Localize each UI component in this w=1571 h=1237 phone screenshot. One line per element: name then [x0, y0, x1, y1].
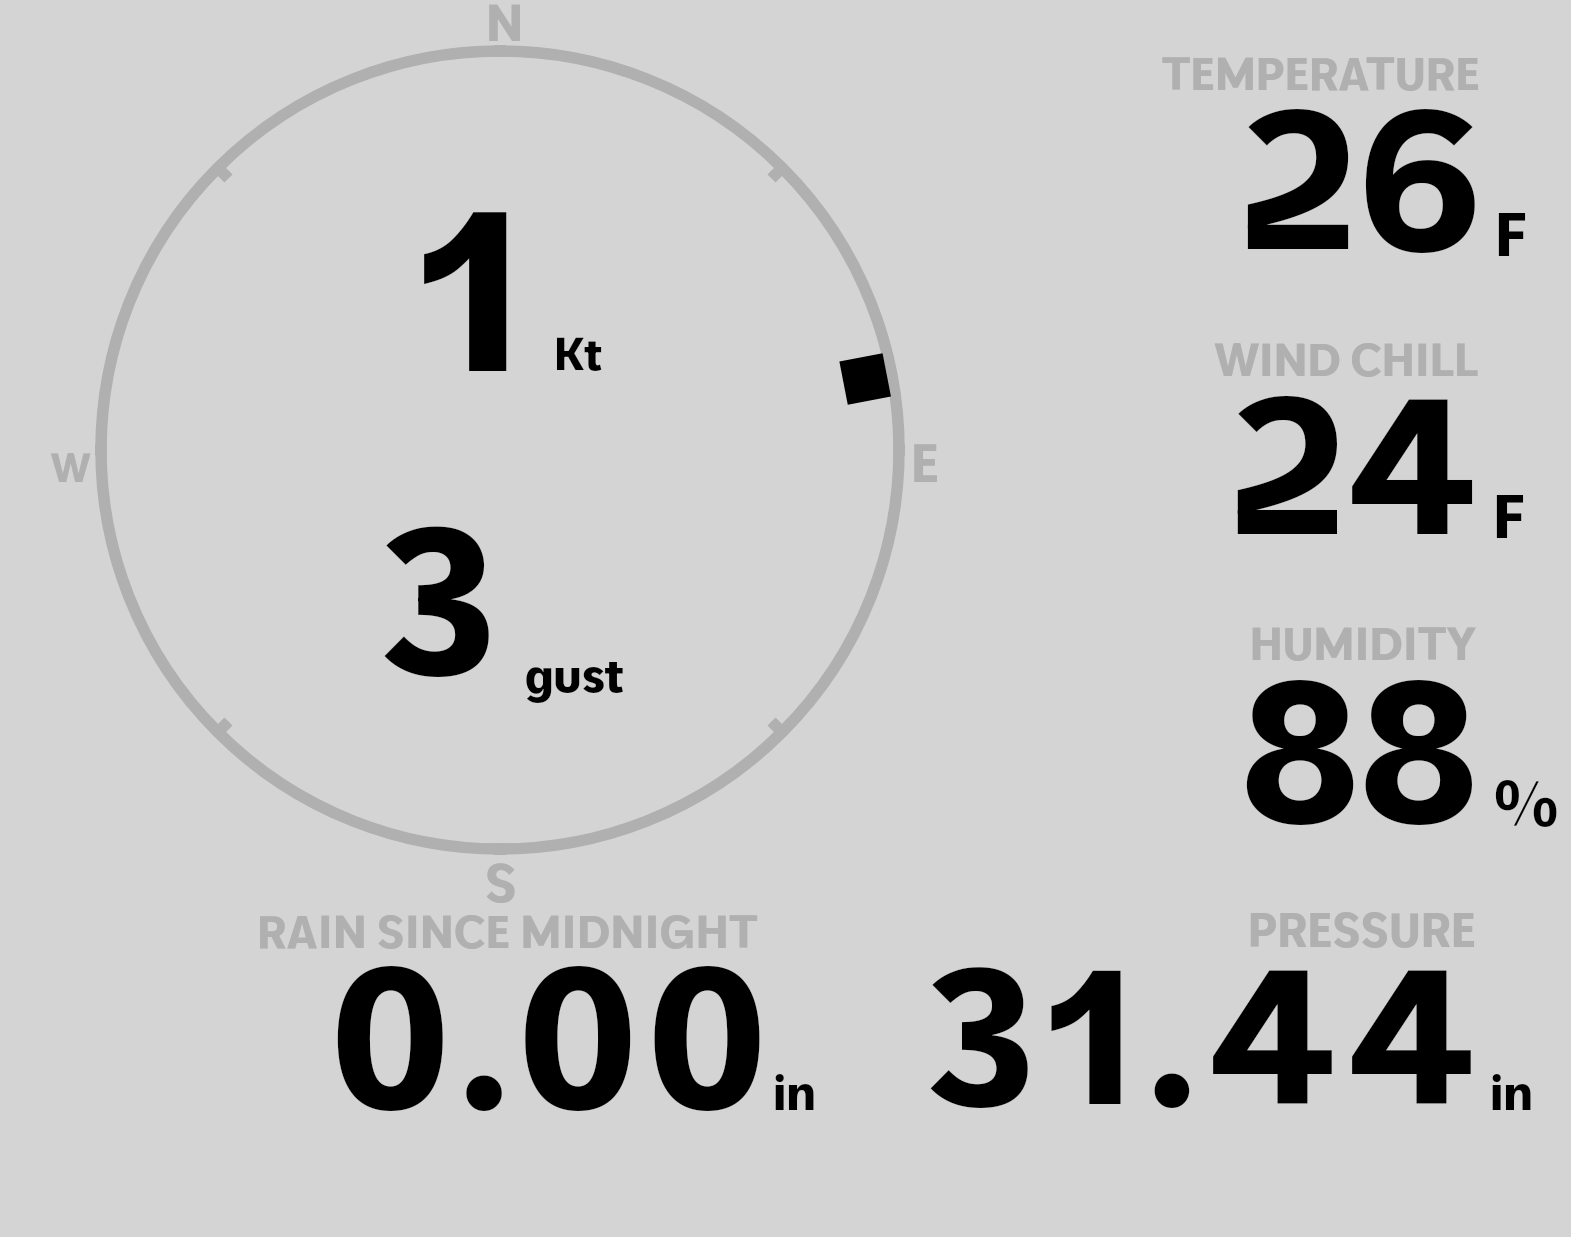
staticText: S	[485, 849, 517, 915]
button[interactable]: Temperature 26 degrees Fahrenheit	[1100, 30, 1571, 285]
staticText: RAIN SINCE MIDNIGHT	[0, 902, 758, 980]
staticText: 3	[379, 469, 497, 724]
button[interactable]: Pressure 31.44 inches	[880, 890, 1571, 1130]
staticText: PRESSURE	[716, 900, 1476, 980]
staticText: E	[911, 429, 940, 495]
staticText: HUMIDITY	[716, 614, 1476, 692]
button[interactable]: Rain since midnight 0.00 inches	[180, 890, 860, 1130]
staticText: %	[1494, 763, 1559, 842]
staticText: TEMPERATURE	[720, 44, 1480, 122]
staticText: in	[773, 1061, 817, 1122]
button[interactable]: Humidity 88 percent	[1100, 585, 1571, 840]
staticText: WIND CHILL	[718, 330, 1478, 408]
staticText: F	[1493, 476, 1525, 554]
staticText: 1	[420, 145, 524, 428]
button[interactable]: Wind chill 24 degrees Fahrenheit	[1100, 300, 1571, 555]
staticText: gust	[525, 644, 624, 704]
staticText: W	[51, 441, 91, 492]
staticText: 26	[722, 55, 1482, 385]
staticText: N	[486, 0, 524, 54]
staticText: Kt	[554, 325, 602, 381]
button[interactable]: Wind direction compass, 1 knot, gusting …	[60, 20, 960, 890]
staticText: F	[1495, 194, 1527, 272]
staticText: 88	[718, 625, 1478, 958]
staticText: 31.44	[727, 914, 1487, 1237]
staticText: 24	[716, 342, 1476, 668]
staticText: 0.00	[15, 912, 775, 1237]
staticText: in	[1490, 1061, 1534, 1122]
